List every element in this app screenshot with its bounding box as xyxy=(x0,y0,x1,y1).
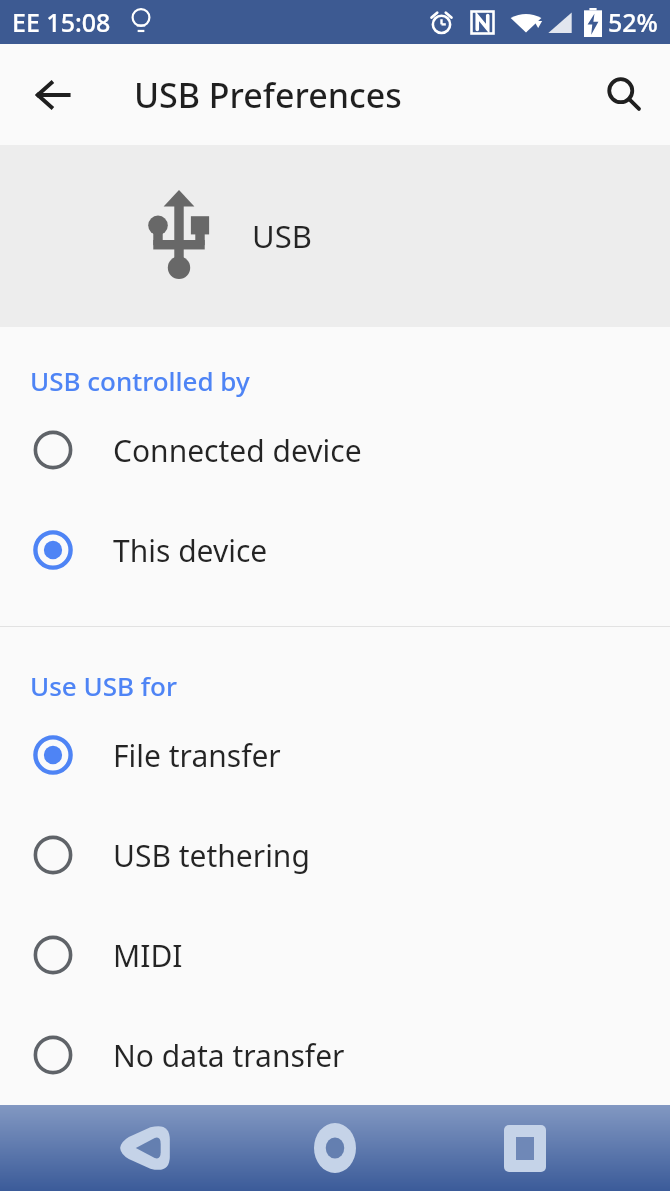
staticText: Use USB for xyxy=(30,668,177,703)
staticText: USB Preferences xyxy=(134,72,402,118)
button[interactable]: Recent apps xyxy=(480,1105,570,1191)
staticText: File transfer xyxy=(113,735,281,776)
staticText: EE 15:08 xyxy=(12,5,111,39)
staticText: USB controlled by xyxy=(30,363,250,398)
staticText: This device xyxy=(113,530,268,571)
staticText: Connected device xyxy=(113,430,362,471)
button[interactable]: Back xyxy=(22,63,86,127)
staticText: 52% xyxy=(608,5,658,39)
button[interactable]: USB tethering xyxy=(0,805,670,905)
button[interactable]: This device xyxy=(0,500,670,600)
button[interactable]: Connected device xyxy=(0,400,670,500)
staticText: No data transfer xyxy=(113,1035,345,1076)
button[interactable]: Home xyxy=(290,1105,380,1191)
button[interactable]: Back xyxy=(100,1105,190,1191)
button[interactable]: No data transfer xyxy=(0,1005,670,1105)
button[interactable]: File transfer xyxy=(0,705,670,805)
button[interactable]: Search xyxy=(592,63,656,127)
staticText: USB tethering xyxy=(113,835,310,876)
staticText: USB xyxy=(252,215,312,257)
staticText: MIDI xyxy=(113,935,183,976)
button[interactable]: MIDI xyxy=(0,905,670,1005)
